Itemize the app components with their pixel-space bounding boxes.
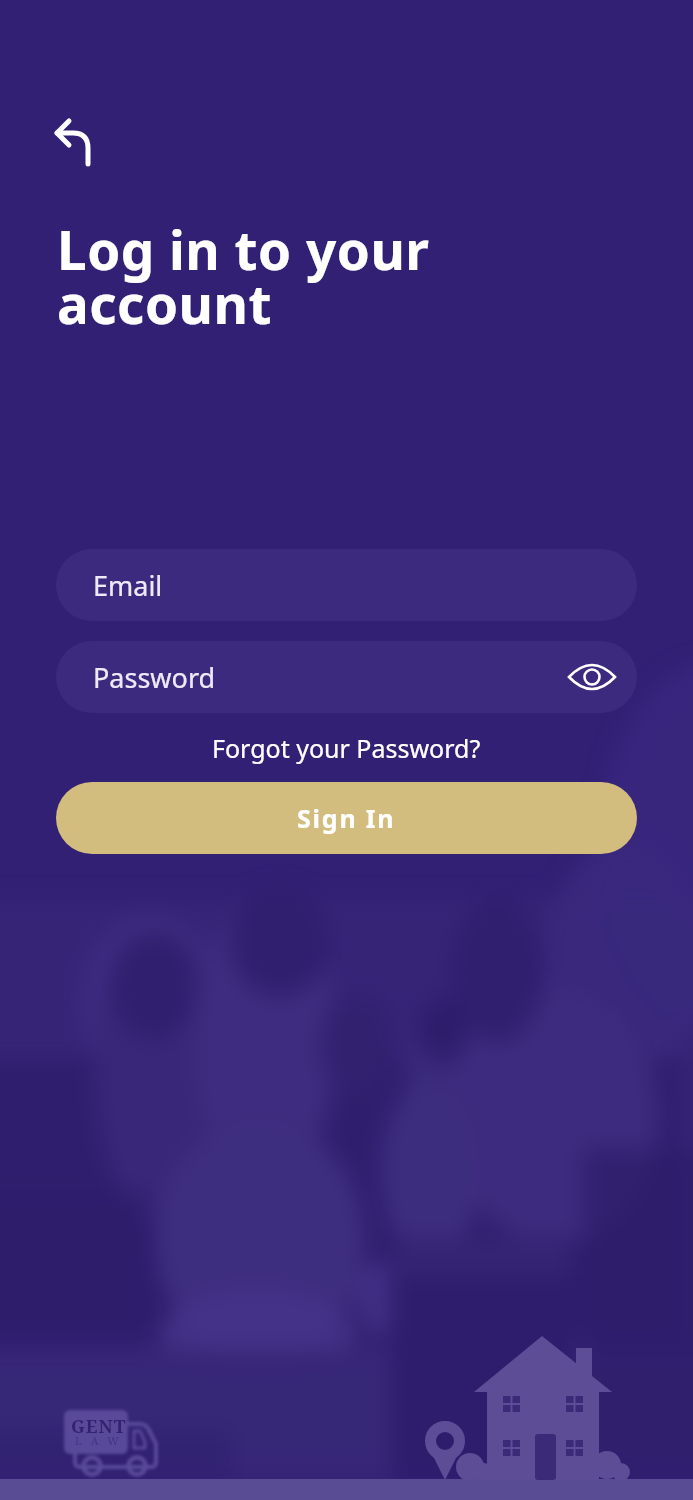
button[interactable]: Email [56, 549, 637, 621]
button[interactable]: Password [56, 641, 637, 713]
button[interactable] [45, 107, 101, 175]
staticText: L A W [75, 1433, 122, 1448]
staticText: Log in to your account [57, 213, 430, 340]
staticText: Sign In [297, 801, 396, 835]
button[interactable]: Forgot your Password? [212, 731, 481, 765]
staticText: Email [93, 567, 163, 604]
staticText: Password [93, 659, 216, 696]
staticText: GENT [71, 1414, 127, 1439]
button[interactable]: Sign In [56, 782, 637, 854]
